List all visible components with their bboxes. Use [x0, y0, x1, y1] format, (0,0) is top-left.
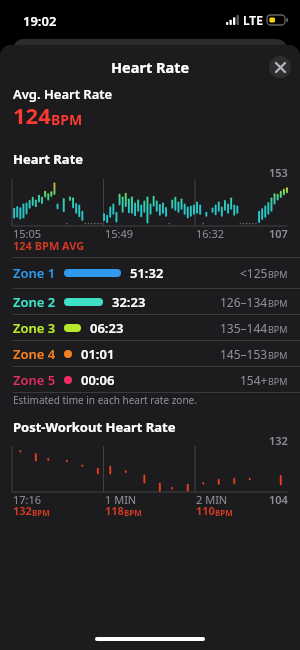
- staticText: 15:05: [13, 226, 42, 241]
- staticText: 00:06: [81, 371, 115, 389]
- staticText: 124: [13, 100, 51, 130]
- staticText: Avg. Heart Rate: [13, 85, 113, 103]
- staticText: Zone 2: [13, 293, 64, 311]
- staticText: 104: [269, 492, 288, 507]
- staticText: 126–134: [220, 294, 268, 310]
- button[interactable]: Zone 1: [0, 258, 300, 288]
- staticText: 32:23: [112, 293, 146, 311]
- staticText: 132: [269, 433, 288, 448]
- staticText: 145–153: [220, 346, 268, 362]
- staticText: 2 MIN: [196, 492, 228, 507]
- staticText: 153: [269, 165, 288, 180]
- staticText: 17:16: [13, 492, 42, 507]
- staticText: LTE: [243, 12, 263, 28]
- staticText: BPM: [32, 507, 50, 518]
- staticText: 06:23: [90, 319, 124, 337]
- button[interactable]: Zone 3: [0, 315, 300, 340]
- staticText: 132: [13, 503, 32, 518]
- staticText: Heart Rate: [13, 150, 84, 168]
- staticText: 19:02: [23, 12, 57, 30]
- staticText: 110: [196, 503, 215, 518]
- staticText: 107: [269, 226, 288, 241]
- staticText: 154+: [240, 372, 268, 388]
- staticText: Zone 3: [13, 319, 64, 337]
- staticText: 01:01: [81, 345, 115, 363]
- staticText: Estimated time in each heart rate zone.: [13, 393, 197, 407]
- staticText: Zone 1: [13, 264, 64, 282]
- staticText: <125: [240, 265, 268, 281]
- staticText: BPM: [268, 268, 288, 280]
- button[interactable]: Zone 2: [0, 289, 300, 314]
- staticText: BPM: [51, 110, 83, 129]
- staticText: BPM: [268, 323, 288, 335]
- staticText: BPM: [268, 349, 288, 361]
- staticText: BPM: [215, 507, 233, 518]
- staticText: 51:32: [130, 264, 164, 282]
- staticText: 16:32: [196, 226, 225, 241]
- staticText: 135–144: [220, 320, 268, 336]
- staticText: 15:49: [105, 226, 134, 241]
- staticText: Zone 4: [13, 345, 64, 363]
- staticText: Heart Rate: [111, 57, 190, 77]
- staticText: BPM: [268, 297, 288, 309]
- staticText: 118: [105, 503, 124, 518]
- staticText: BPM: [124, 507, 142, 518]
- staticText: 124 BPM AVG: [13, 238, 85, 253]
- button[interactable]: Close: [269, 56, 291, 78]
- staticText: Post-Workout Heart Rate: [13, 418, 176, 436]
- button[interactable]: Zone 5: [0, 367, 300, 392]
- staticText: BPM: [268, 375, 288, 387]
- button[interactable]: Zone 4: [0, 341, 300, 366]
- staticText: 1 MIN: [105, 492, 137, 507]
- staticText: Zone 5: [13, 371, 64, 389]
